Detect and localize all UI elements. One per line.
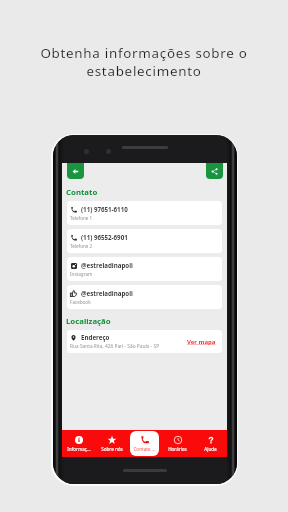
staticText: Sobre nós	[101, 446, 123, 452]
staticText: Ajuda	[204, 446, 217, 452]
staticText: Informaç...	[67, 446, 91, 452]
button[interactable]: Endereço	[67, 330, 222, 353]
button[interactable]: Ajuda	[196, 430, 225, 457]
staticText: (11) 96552-6901	[81, 233, 128, 241]
button[interactable]: Sobre nós	[97, 430, 126, 457]
button[interactable]: Horários	[163, 430, 192, 457]
staticText: Horários	[168, 446, 187, 452]
staticText: Localização	[66, 316, 111, 327]
staticText: Facebook	[70, 299, 91, 305]
staticText: Instagram	[70, 271, 93, 277]
staticText: @estreladinapoli	[81, 289, 133, 297]
staticText: (11) 97651-6110	[81, 205, 128, 213]
button[interactable]: Contato ...	[130, 431, 159, 456]
staticText: Contato	[66, 187, 98, 198]
staticText: Telefone 2	[70, 243, 93, 249]
staticText: Contato ...	[133, 446, 156, 452]
button[interactable]: @estreladinapoli	[67, 257, 222, 281]
button[interactable]: Informaç...	[64, 430, 93, 457]
staticText: Endereço	[81, 333, 110, 341]
button[interactable]: Ver mapa	[187, 338, 216, 346]
button[interactable]: Compartilhar	[206, 163, 223, 179]
button[interactable]: (11) 97651-6110	[67, 201, 222, 225]
staticText: Telefone 1	[70, 215, 93, 221]
staticText: @estreladinapoli	[81, 261, 133, 269]
button[interactable]: @estreladinapoli	[67, 285, 222, 309]
button[interactable]: (11) 96552-6901	[67, 229, 222, 253]
button[interactable]: Voltar	[67, 163, 84, 179]
staticText: Obtenha informações sobre o estabelecime…	[40, 44, 248, 80]
staticText: Rua Santa Rita, 426 Pari - São Paulo - S…	[70, 343, 160, 350]
